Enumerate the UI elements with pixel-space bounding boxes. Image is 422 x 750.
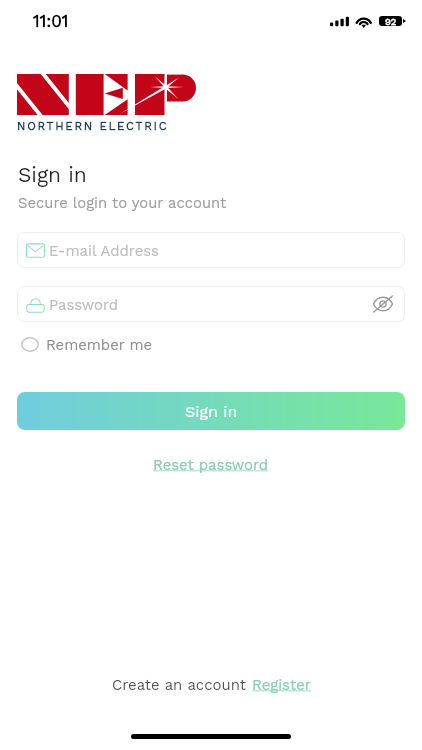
staticText: 92 <box>385 16 397 27</box>
staticText: Register <box>252 676 311 693</box>
button[interactable]: E-mail Address <box>17 232 405 268</box>
staticText: Reset password <box>153 456 269 473</box>
staticText: Password <box>49 296 119 313</box>
button[interactable]: Show password <box>372 293 394 315</box>
staticText: Remember me <box>46 336 153 353</box>
staticText: E-mail Address <box>49 242 159 259</box>
staticText: Create an account <box>112 676 252 693</box>
staticText: Secure login to your account <box>18 194 227 211</box>
button[interactable]: Register <box>252 676 311 693</box>
button[interactable]: Remember me <box>21 335 153 353</box>
staticText: Sign in <box>185 402 238 421</box>
staticText: 11:01 <box>33 11 69 31</box>
staticText: NORTHERN ELECTRIC <box>17 119 169 132</box>
button[interactable]: Reset password <box>153 456 269 473</box>
button[interactable]: Password <box>17 286 405 322</box>
staticText: Sign in <box>18 162 87 187</box>
button[interactable]: Sign in <box>17 392 405 430</box>
